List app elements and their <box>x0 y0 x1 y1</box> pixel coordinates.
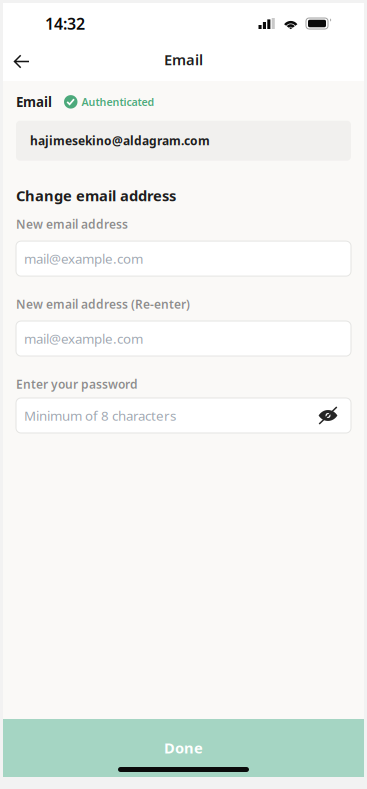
staticText: mail@example.com <box>24 250 143 267</box>
staticText: 14:32 <box>45 13 85 34</box>
staticText: Done <box>164 738 203 757</box>
staticText: Change email address <box>16 186 176 205</box>
staticText: Authenticated <box>81 95 154 109</box>
staticText: mail@example.com <box>24 330 143 347</box>
button[interactable]: Back <box>3 44 41 81</box>
staticText: Minimum of 8 characters <box>24 407 176 424</box>
staticText: New email address (Re-enter) <box>16 296 190 312</box>
button[interactable]: Done <box>3 719 364 777</box>
staticText: Email <box>16 93 52 111</box>
button[interactable]: Show password <box>313 399 343 431</box>
staticText: Enter your password <box>16 376 138 392</box>
staticText: hajimesekino@aldagram.com <box>30 133 210 149</box>
staticText: New email address <box>16 216 128 232</box>
staticText: Email <box>164 50 203 69</box>
